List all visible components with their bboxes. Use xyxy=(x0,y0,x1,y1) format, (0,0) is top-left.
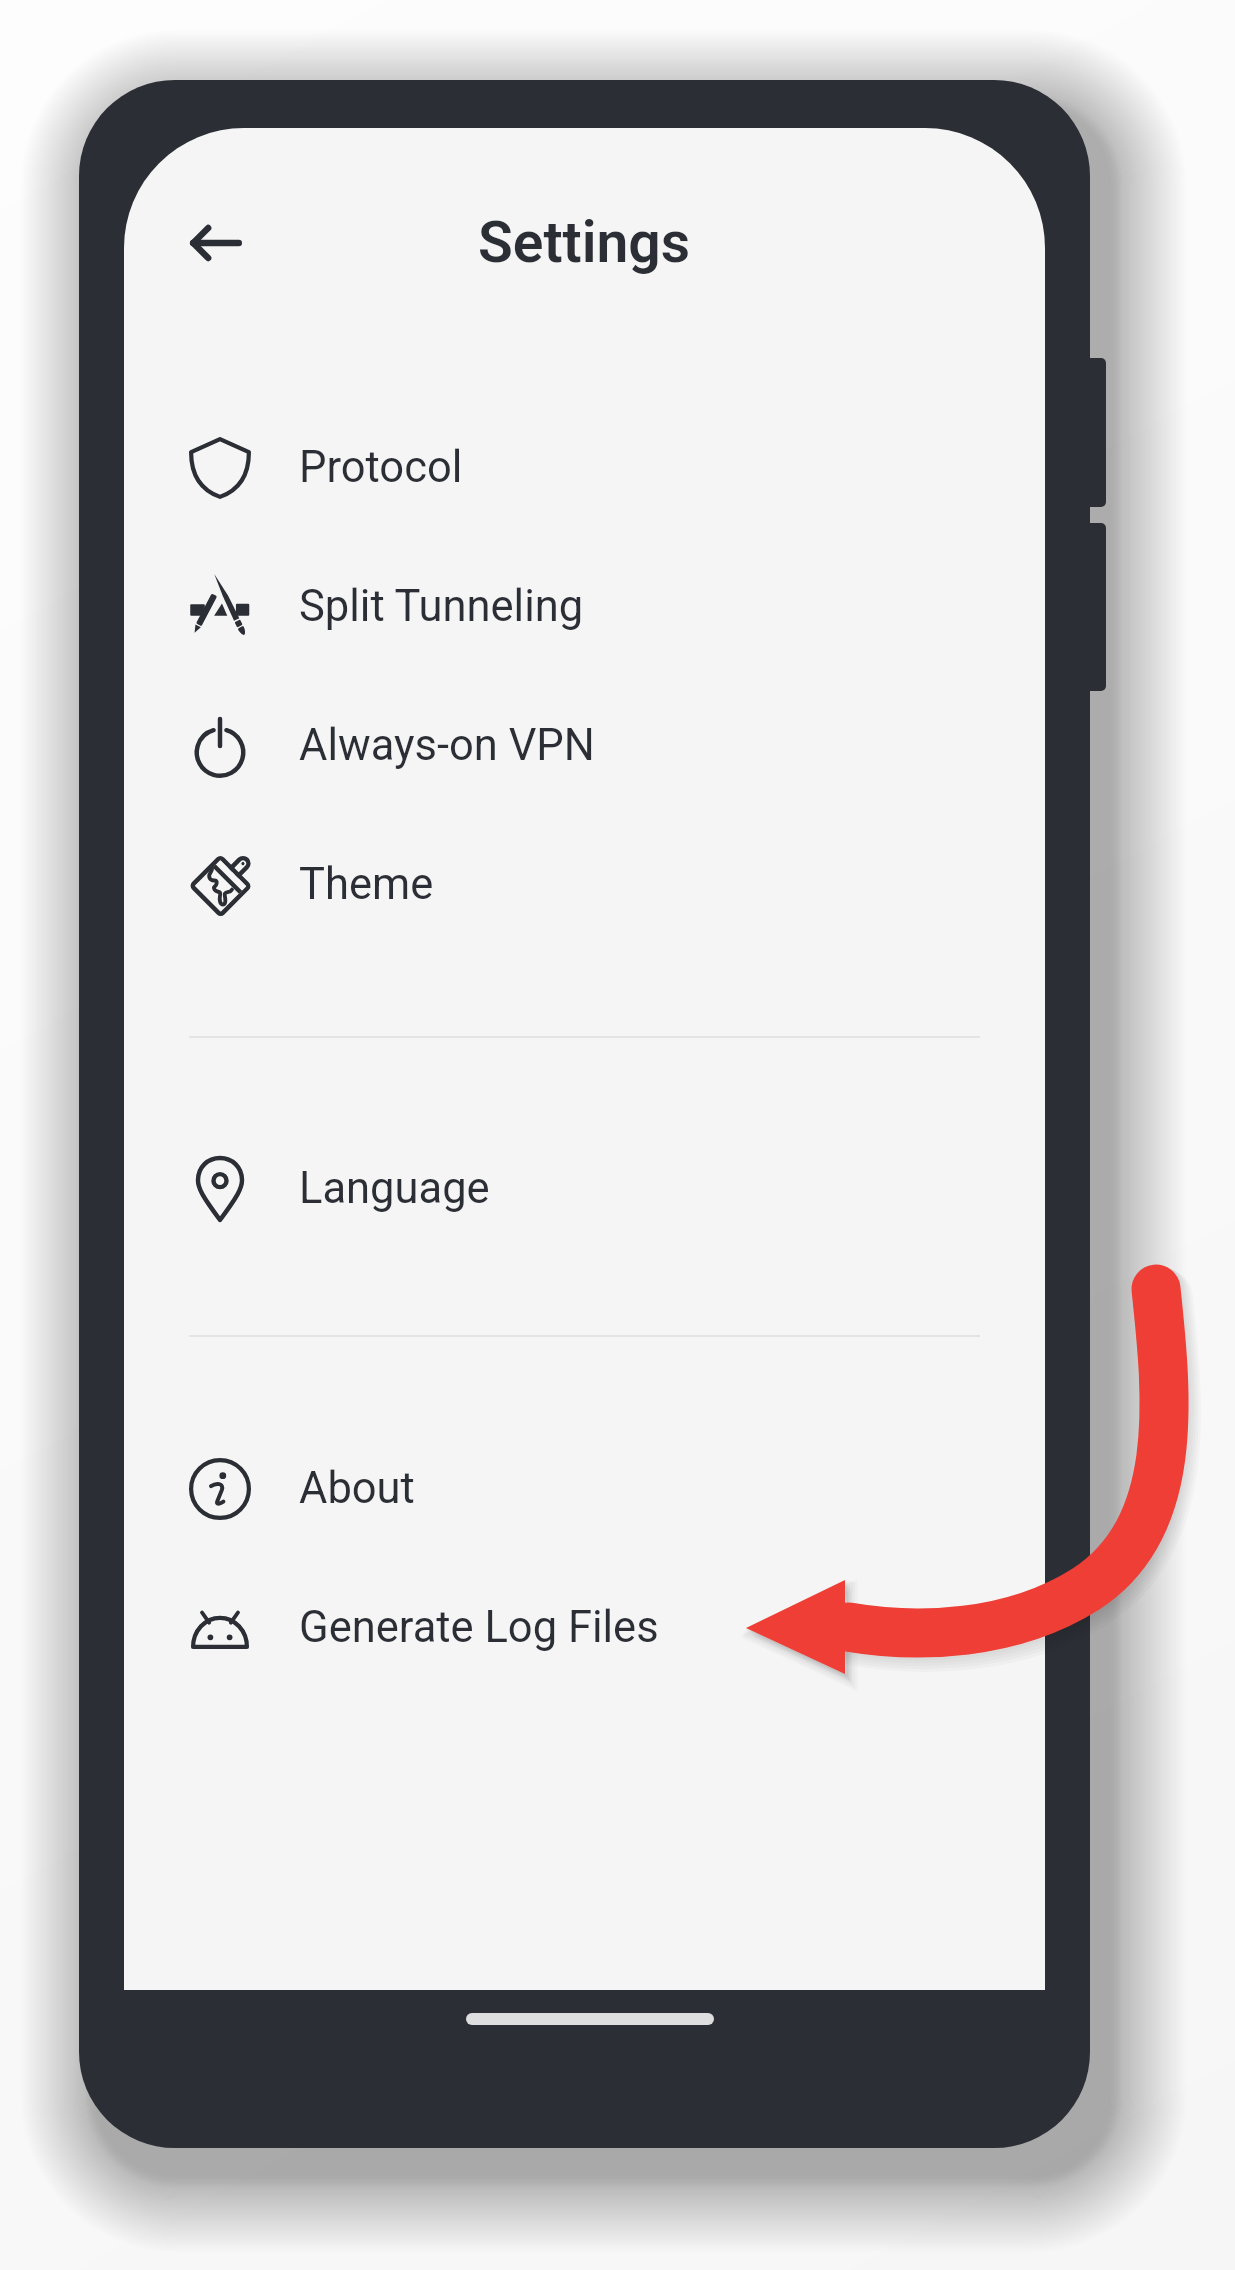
button[interactable]: Theme xyxy=(124,815,1045,954)
staticText: About xyxy=(299,1463,415,1514)
button[interactable]: About xyxy=(124,1419,1045,1558)
button[interactable]: Protocol xyxy=(124,398,1045,537)
button[interactable]: Back xyxy=(176,199,264,287)
button[interactable]: Language xyxy=(124,1119,1045,1258)
staticText: Generate Log Files xyxy=(299,1602,659,1653)
staticText: Language xyxy=(299,1163,490,1214)
staticText: Settings xyxy=(334,209,834,276)
staticText: Theme xyxy=(299,859,434,910)
button[interactable]: Always-on VPN xyxy=(124,676,1045,815)
staticText: Split Tunneling xyxy=(299,581,584,632)
button[interactable]: Split Tunneling xyxy=(124,537,1045,676)
staticText: Protocol xyxy=(299,442,463,493)
staticText: Always-on VPN xyxy=(299,720,595,771)
button[interactable]: Generate Log Files xyxy=(124,1558,1045,1697)
